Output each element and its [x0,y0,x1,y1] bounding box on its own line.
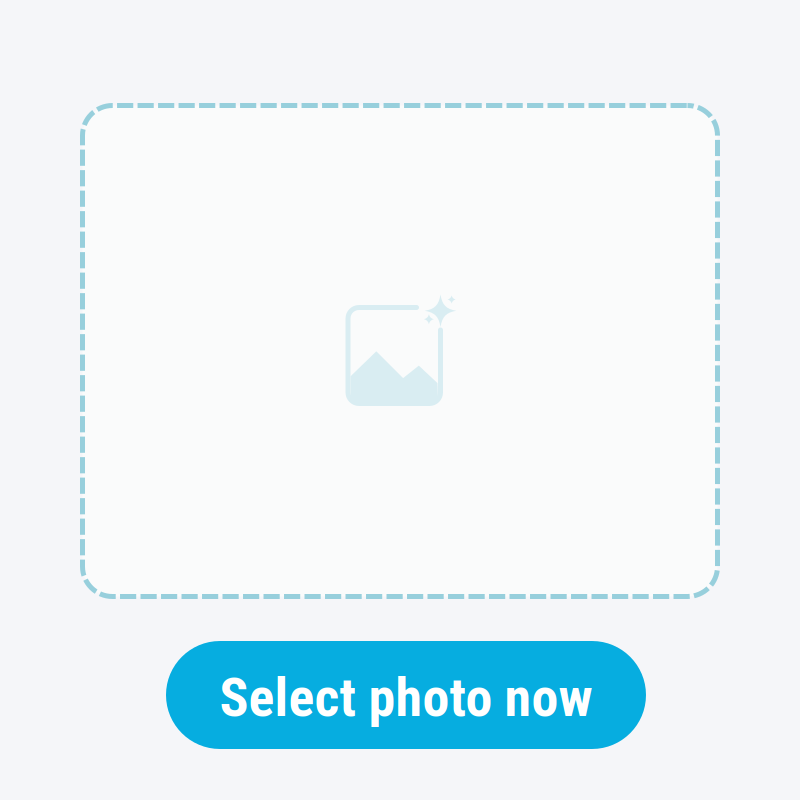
staticText: Select photo now [219,666,592,729]
button[interactable]: Add photo [82,105,717,596]
button[interactable]: Select photo now [166,641,646,749]
